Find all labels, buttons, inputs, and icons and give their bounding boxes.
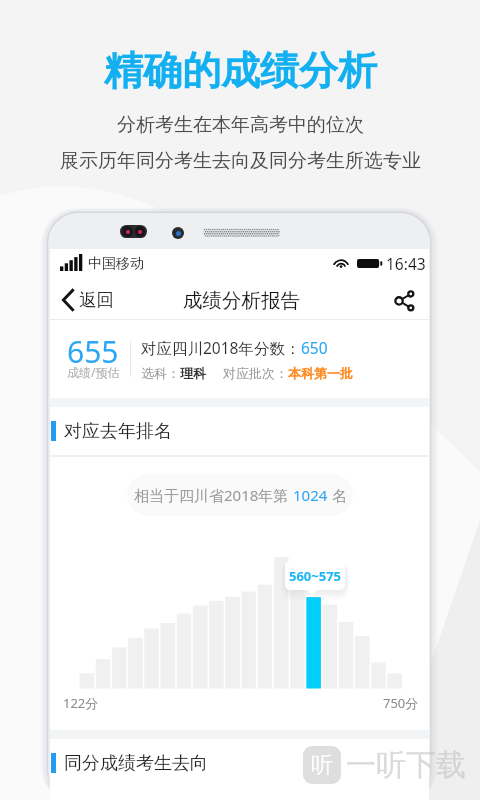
staticText: 同分成绩考生去向 (64, 752, 208, 775)
staticText: 展示历年同分考生去向及同分考生所选专业 (60, 149, 421, 173)
staticText: 对应四川2018年分数： (141, 337, 301, 358)
staticText: 本科第一批 (288, 365, 353, 381)
staticText: 一听下载 (346, 746, 466, 784)
staticText: 1024 (293, 485, 328, 505)
staticText: 成绩分析报告 (183, 288, 300, 313)
staticText: 精确的成绩分析 (104, 46, 377, 95)
staticText: 返回 (79, 289, 114, 311)
staticText: 750分 (383, 694, 419, 712)
staticText: 分析考生在本年高考中的位次 (117, 113, 364, 137)
staticText: 相当于四川省2018年第 (134, 485, 293, 505)
staticText: 听 (311, 751, 333, 779)
staticText: 中国移动 (88, 255, 144, 273)
button[interactable]: Share (387, 283, 421, 317)
staticText: 名 (328, 485, 347, 505)
staticText: 理科 (180, 365, 206, 381)
staticText: 655 (67, 331, 119, 372)
staticText: 对应去年排名 (64, 420, 172, 443)
staticText: 对应批次： (223, 365, 288, 381)
button[interactable]: 返回 (50, 285, 128, 315)
staticText: 16:43 (386, 253, 426, 274)
staticText: 122分 (63, 694, 99, 712)
staticText: 560~575 (289, 567, 342, 585)
button[interactable]: 相当于四川省2018年第 (127, 474, 353, 516)
staticText: 650 (301, 337, 328, 358)
staticText: 成绩/预估 (67, 364, 120, 380)
staticText: 选科： (141, 365, 180, 381)
